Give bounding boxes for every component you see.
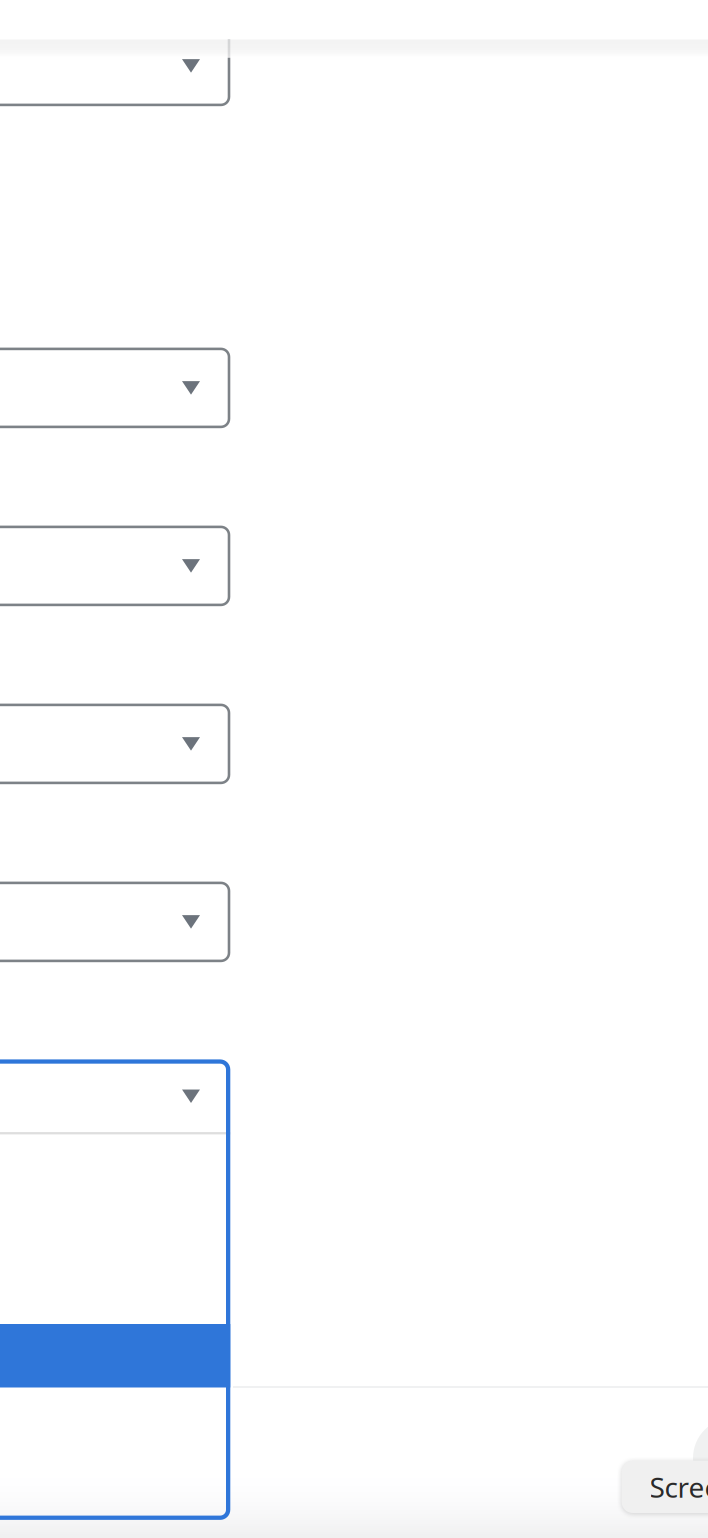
button[interactable]: Screenshot [622, 1461, 708, 1513]
button[interactable]: Select option [0, 526, 230, 606]
button[interactable]: Select option [0, 704, 230, 784]
staticText: Screenshot [650, 1468, 708, 1505]
button[interactable]: Select option [0, 348, 230, 428]
button[interactable]: Select option [0, 882, 230, 962]
button[interactable]: Select option [0, 26, 230, 106]
button[interactable]: Open select menu [0, 1059, 230, 1520]
